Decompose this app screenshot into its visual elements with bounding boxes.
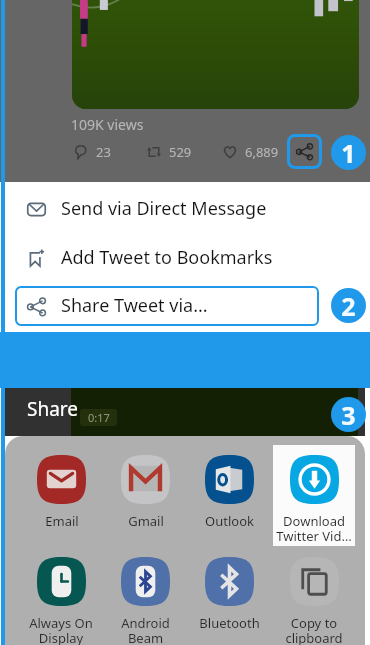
- staticText: Always On Display: [29, 614, 93, 645]
- button[interactable]: Gmail: [104, 448, 186, 544]
- staticText: 0:17: [88, 410, 110, 425]
- staticText: 109K views: [71, 115, 144, 134]
- button[interactable]: Bluetooth: [188, 550, 270, 645]
- staticText: 3: [341, 398, 356, 432]
- staticText: Send via Direct Message: [61, 196, 267, 221]
- staticText: 6,889: [245, 143, 279, 161]
- button[interactable]: Send via Direct Message: [0, 192, 370, 226]
- staticText: Gmail: [128, 512, 164, 530]
- button[interactable]: Android Beam: [104, 550, 186, 645]
- button[interactable]: Email: [20, 448, 102, 544]
- button[interactable]: Download Twitter Vid…: [273, 448, 355, 544]
- staticText: Share: [27, 396, 79, 422]
- button[interactable]: Add Tweet to Bookmarks: [0, 241, 370, 275]
- button[interactable]: Always On Display: [20, 550, 102, 645]
- staticText: Copy to clipboard: [285, 614, 343, 645]
- staticText: Bluetooth: [199, 614, 260, 632]
- button[interactable]: Share Tweet via...: [15, 286, 319, 326]
- button[interactable]: Outlook: [188, 448, 270, 544]
- staticText: Outlook: [205, 512, 254, 530]
- button[interactable]: Copy to clipboard: [273, 550, 355, 645]
- staticText: Share Tweet via...: [61, 293, 208, 318]
- staticText: 529: [169, 143, 192, 161]
- staticText: 2: [341, 289, 356, 323]
- staticText: 23: [96, 143, 111, 161]
- staticText: 1: [341, 136, 356, 170]
- staticText: Email: [45, 512, 79, 530]
- staticText: Android Beam: [121, 614, 170, 645]
- staticText: Add Tweet to Bookmarks: [61, 245, 273, 270]
- staticText: Download Twitter Vid…: [276, 512, 352, 544]
- button[interactable]: Share: [287, 134, 322, 169]
